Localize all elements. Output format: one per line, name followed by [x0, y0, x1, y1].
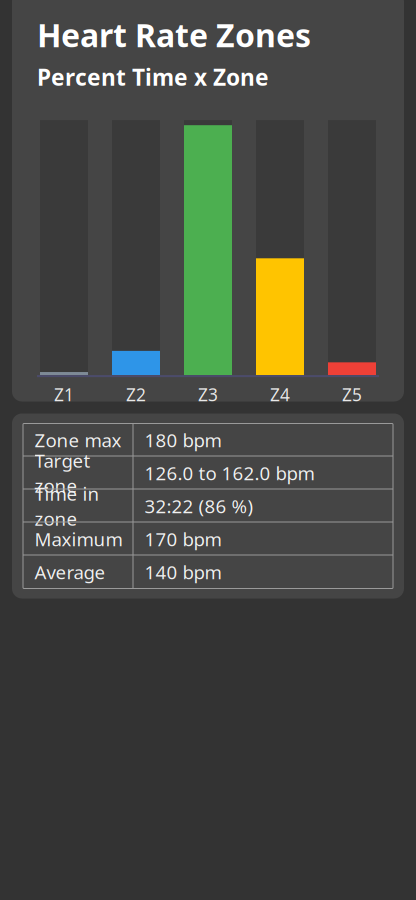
staticText: Maximum	[34, 527, 122, 551]
staticText: Average	[34, 560, 105, 584]
staticText: 126.0 to 162.0 bpm	[144, 461, 314, 485]
staticText: Percent Time x Zone	[37, 62, 269, 92]
staticText: Zone max	[34, 428, 121, 452]
staticText: 170 bpm	[144, 527, 221, 551]
staticText: Target zone	[34, 448, 90, 498]
staticText: Z2	[126, 383, 146, 406]
staticText: Time in zone	[34, 481, 99, 531]
staticText: Z1	[54, 383, 74, 406]
staticText: Z4	[270, 383, 290, 406]
staticText: 140 bpm	[144, 560, 221, 584]
staticText: 180 bpm	[144, 428, 221, 452]
staticText: 32:22 (86 %)	[144, 494, 253, 518]
staticText: Z5	[342, 383, 362, 406]
staticText: Z3	[198, 383, 218, 406]
staticText: Heart Rate Zones	[37, 13, 311, 56]
